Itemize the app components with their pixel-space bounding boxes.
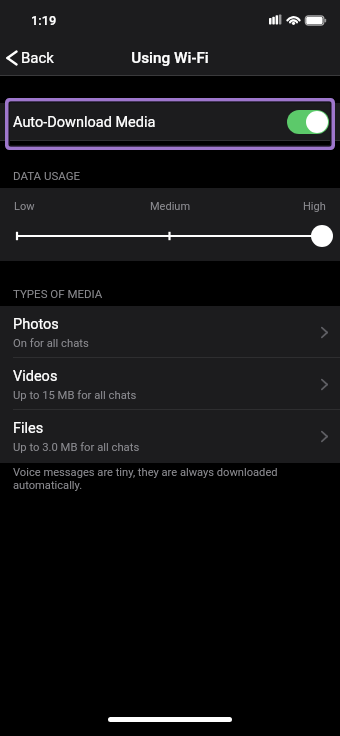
button[interactable]: Photos	[0, 306, 340, 358]
staticText: TYPES OF MEDIA	[13, 287, 103, 300]
staticText: Up to 3.0 MB for all chats	[13, 441, 140, 454]
button[interactable]: Back	[0, 44, 62, 72]
staticText: Low	[14, 200, 35, 213]
staticText: Photos	[13, 316, 59, 333]
staticText: Videos	[13, 368, 58, 385]
staticText: Voice messages are tiny, they are always…	[13, 466, 278, 492]
staticText: Using Wi-Fi	[131, 49, 209, 67]
staticText: High	[303, 200, 326, 213]
staticText: Files	[13, 420, 44, 437]
staticText: On for all chats	[13, 337, 89, 350]
button[interactable]: Files	[0, 410, 340, 462]
button[interactable]: Auto-Download Media	[0, 103, 340, 141]
staticText: Medium	[150, 200, 191, 213]
staticText: 1:19	[31, 13, 57, 28]
button[interactable]: Data usage slider	[0, 221, 340, 251]
staticText: Auto-Download Media	[13, 114, 156, 131]
staticText: Up to 15 MB for all chats	[13, 389, 137, 402]
button[interactable]: Videos	[0, 358, 340, 410]
button[interactable]: Auto-Download Media toggle	[287, 110, 329, 134]
staticText: Back	[21, 49, 54, 67]
staticText: DATA USAGE	[13, 169, 81, 182]
